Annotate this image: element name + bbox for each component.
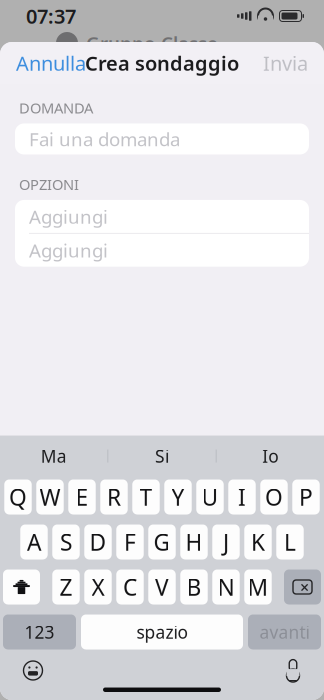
staticText: K — [251, 527, 265, 557]
staticText: Annulla — [16, 50, 86, 76]
staticText: Si — [155, 444, 169, 467]
staticText: M — [247, 572, 268, 602]
staticText: F — [124, 527, 136, 557]
staticText: N — [217, 572, 234, 602]
button[interactable]: H — [180, 524, 208, 559]
staticText: DOMANDA — [19, 98, 93, 117]
button[interactable]: O — [260, 479, 288, 514]
button[interactable]: avanti — [248, 614, 321, 649]
button[interactable]: G — [148, 524, 176, 559]
button[interactable]: S — [52, 524, 80, 559]
button[interactable]: Z — [52, 569, 80, 604]
button[interactable]: V — [148, 569, 176, 604]
staticText: G — [153, 527, 170, 557]
staticText: H — [185, 527, 202, 557]
button[interactable]: M — [244, 569, 272, 604]
staticText: Aggiungi — [29, 204, 108, 229]
button[interactable]: Emoji — [9, 654, 57, 686]
button[interactable]: Shift — [3, 569, 40, 604]
button[interactable]: Aggiungi — [15, 234, 309, 267]
button[interactable]: U — [196, 479, 224, 514]
button[interactable]: N — [212, 569, 240, 604]
button[interactable]: R — [100, 479, 128, 514]
staticText: J — [223, 527, 229, 557]
staticText: P — [299, 482, 313, 512]
staticText: Invia — [263, 50, 308, 76]
button[interactable]: D — [84, 524, 112, 559]
staticText: Y — [171, 482, 184, 512]
staticText: Fai una domanda — [29, 127, 180, 151]
button[interactable]: C — [116, 569, 144, 604]
button[interactable]: Q — [4, 479, 32, 514]
staticText: L — [284, 527, 296, 557]
button[interactable]: spazio — [81, 614, 243, 649]
staticText: I — [238, 482, 246, 512]
button[interactable]: Dictation — [271, 654, 315, 687]
button[interactable]: X — [84, 569, 112, 604]
staticText: A — [27, 527, 41, 557]
staticText: Z — [59, 572, 72, 602]
button[interactable]: A — [20, 524, 48, 559]
staticText: × — [300, 576, 309, 598]
staticText: C — [123, 572, 137, 602]
staticText: V — [155, 572, 169, 602]
button[interactable]: I — [228, 479, 256, 514]
staticText: S — [60, 527, 72, 557]
staticText: OPZIONI — [19, 174, 79, 194]
staticText: U — [201, 482, 218, 512]
staticText: D — [89, 527, 106, 557]
button[interactable]: E — [68, 479, 96, 514]
staticText: 07:37 — [26, 3, 76, 29]
button[interactable]: P — [292, 479, 320, 514]
staticText: W — [39, 482, 60, 512]
staticText: spazio — [136, 620, 187, 643]
button[interactable]: Y — [164, 479, 192, 514]
button[interactable]: J — [212, 524, 240, 559]
button[interactable]: L — [276, 524, 304, 559]
button[interactable]: T — [132, 479, 160, 514]
button[interactable]: Fai una domanda — [15, 123, 309, 154]
staticText: O — [265, 482, 283, 512]
staticText: T — [139, 482, 152, 512]
staticText: Crea sondaggio — [85, 50, 239, 76]
staticText: R — [107, 482, 121, 512]
staticText: Io — [262, 444, 278, 467]
button[interactable]: W — [36, 479, 64, 514]
button[interactable]: K — [244, 524, 272, 559]
staticText: avanti — [259, 620, 309, 643]
staticText: E — [75, 482, 88, 512]
staticText: Q — [9, 482, 27, 512]
button[interactable]: Ma — [0, 435, 107, 476]
button[interactable]: 123 — [3, 614, 76, 649]
button[interactable]: Delete — [284, 569, 321, 604]
button[interactable]: Si — [108, 435, 216, 476]
button[interactable]: F — [116, 524, 144, 559]
button[interactable]: Io — [217, 435, 324, 476]
staticText: 123 — [24, 620, 54, 643]
button[interactable]: B — [180, 569, 208, 604]
button[interactable]: Annulla — [0, 40, 102, 86]
staticText: Ma — [41, 444, 67, 467]
staticText: Gruppo Classe — [86, 31, 218, 55]
button[interactable]: Invia — [247, 40, 324, 86]
staticText: Aggiungi — [29, 238, 108, 263]
staticText: B — [186, 572, 201, 602]
button[interactable]: Aggiungi — [15, 200, 309, 233]
staticText: X — [91, 572, 104, 602]
